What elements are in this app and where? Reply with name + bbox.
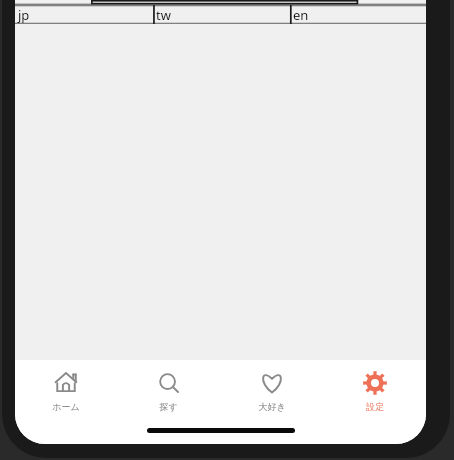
button[interactable]: jp [15,5,153,24]
staticText: en [293,6,309,24]
button[interactable]: 探す [117,360,220,422]
staticText: tw [156,6,171,24]
button[interactable]: 大好き [220,360,323,422]
button[interactable]: ホーム [15,360,117,422]
staticText: 探す [159,401,178,412]
staticText: 大好き [258,401,286,412]
button[interactable]: tw [153,5,290,24]
staticText: ホーム [52,401,80,412]
staticText: jp [18,6,30,24]
staticText: 設定 [366,401,384,412]
button[interactable]: en [290,5,426,24]
button[interactable]: 設定 [323,360,426,422]
